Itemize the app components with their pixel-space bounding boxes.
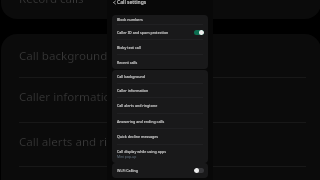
button[interactable]: Call alerts and ringtone: [112, 98, 208, 114]
staticText: Call alerts and ringtone: [19, 134, 147, 150]
staticText: Recent calls: [117, 60, 138, 65]
staticText: Bixby text call: [117, 45, 141, 50]
button[interactable]: Call background: [112, 70, 208, 84]
staticText: Caller ID and spam protection: [117, 30, 169, 35]
button[interactable]: Quick decline messages: [112, 129, 208, 145]
button[interactable]: Switch on: [194, 30, 204, 35]
staticText: Call alerts and ringtone: [117, 103, 158, 108]
button[interactable]: Recent calls: [112, 55, 208, 69]
staticText: Quick decline messages: [117, 134, 159, 139]
staticText: Call background: [117, 74, 145, 79]
button[interactable]: Switch off: [194, 168, 204, 173]
staticText: Call background: [19, 48, 108, 64]
button[interactable]: Caller ID and spam protection: [112, 25, 208, 40]
staticText: Record calls: [19, 0, 84, 7]
staticText: Wi-Fi Calling: [117, 168, 139, 173]
staticText: Mini pop-up: [117, 154, 137, 159]
button[interactable]: Caller information: [112, 84, 208, 98]
button[interactable]: Wi-Fi Calling: [112, 163, 208, 178]
staticText: Block numbers: [117, 17, 143, 22]
staticText: Call settings: [117, 0, 147, 6]
staticText: Caller information: [19, 89, 118, 105]
staticText: Call display while using apps: [117, 149, 166, 154]
button[interactable]: Block numbers: [112, 15, 208, 25]
button[interactable]: Answering and ending calls: [112, 114, 208, 129]
staticText: Caller information: [117, 88, 149, 93]
button[interactable]: Back: [111, 0, 117, 5]
button[interactable]: Call display while using apps: [112, 145, 208, 163]
button[interactable]: Bixby text call: [112, 40, 208, 55]
staticText: Answering and ending calls: [117, 119, 165, 124]
